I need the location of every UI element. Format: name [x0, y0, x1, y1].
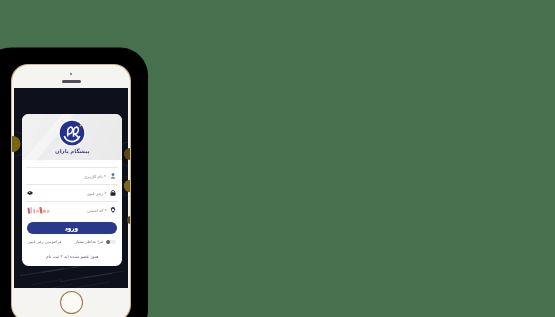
- other: Captcha image: [27, 205, 58, 215]
- button[interactable]: Show password: [22, 185, 122, 201]
- other: Username: [110, 173, 116, 179]
- staticText: کد امنیتی *: [87, 207, 107, 213]
- other: Refresh captcha: [110, 207, 116, 213]
- button[interactable]: نام کاربری *: [22, 168, 122, 184]
- staticText: مرا بخاطر بسپار: [75, 239, 104, 245]
- button[interactable]: هنوز عضو نشده اید ؟ ثبت نام: [46, 253, 99, 259]
- staticText: ورود: [65, 225, 79, 232]
- staticText: رمز عبور *: [87, 190, 107, 196]
- staticText: نام کاربری *: [84, 173, 107, 179]
- other: Remember me: [106, 240, 116, 244]
- other: Show password: [27, 190, 33, 196]
- button[interactable]: Captcha image: [22, 202, 122, 218]
- button[interactable]: Home button: [61, 292, 82, 313]
- other: Password: [110, 190, 116, 196]
- button[interactable]: مرا بخاطر بسپار: [75, 239, 116, 245]
- staticText: پیشگام یاران: [55, 147, 90, 154]
- button[interactable]: فراموشی رمز عبور: [28, 239, 62, 245]
- button[interactable]: ورود: [27, 222, 117, 234]
